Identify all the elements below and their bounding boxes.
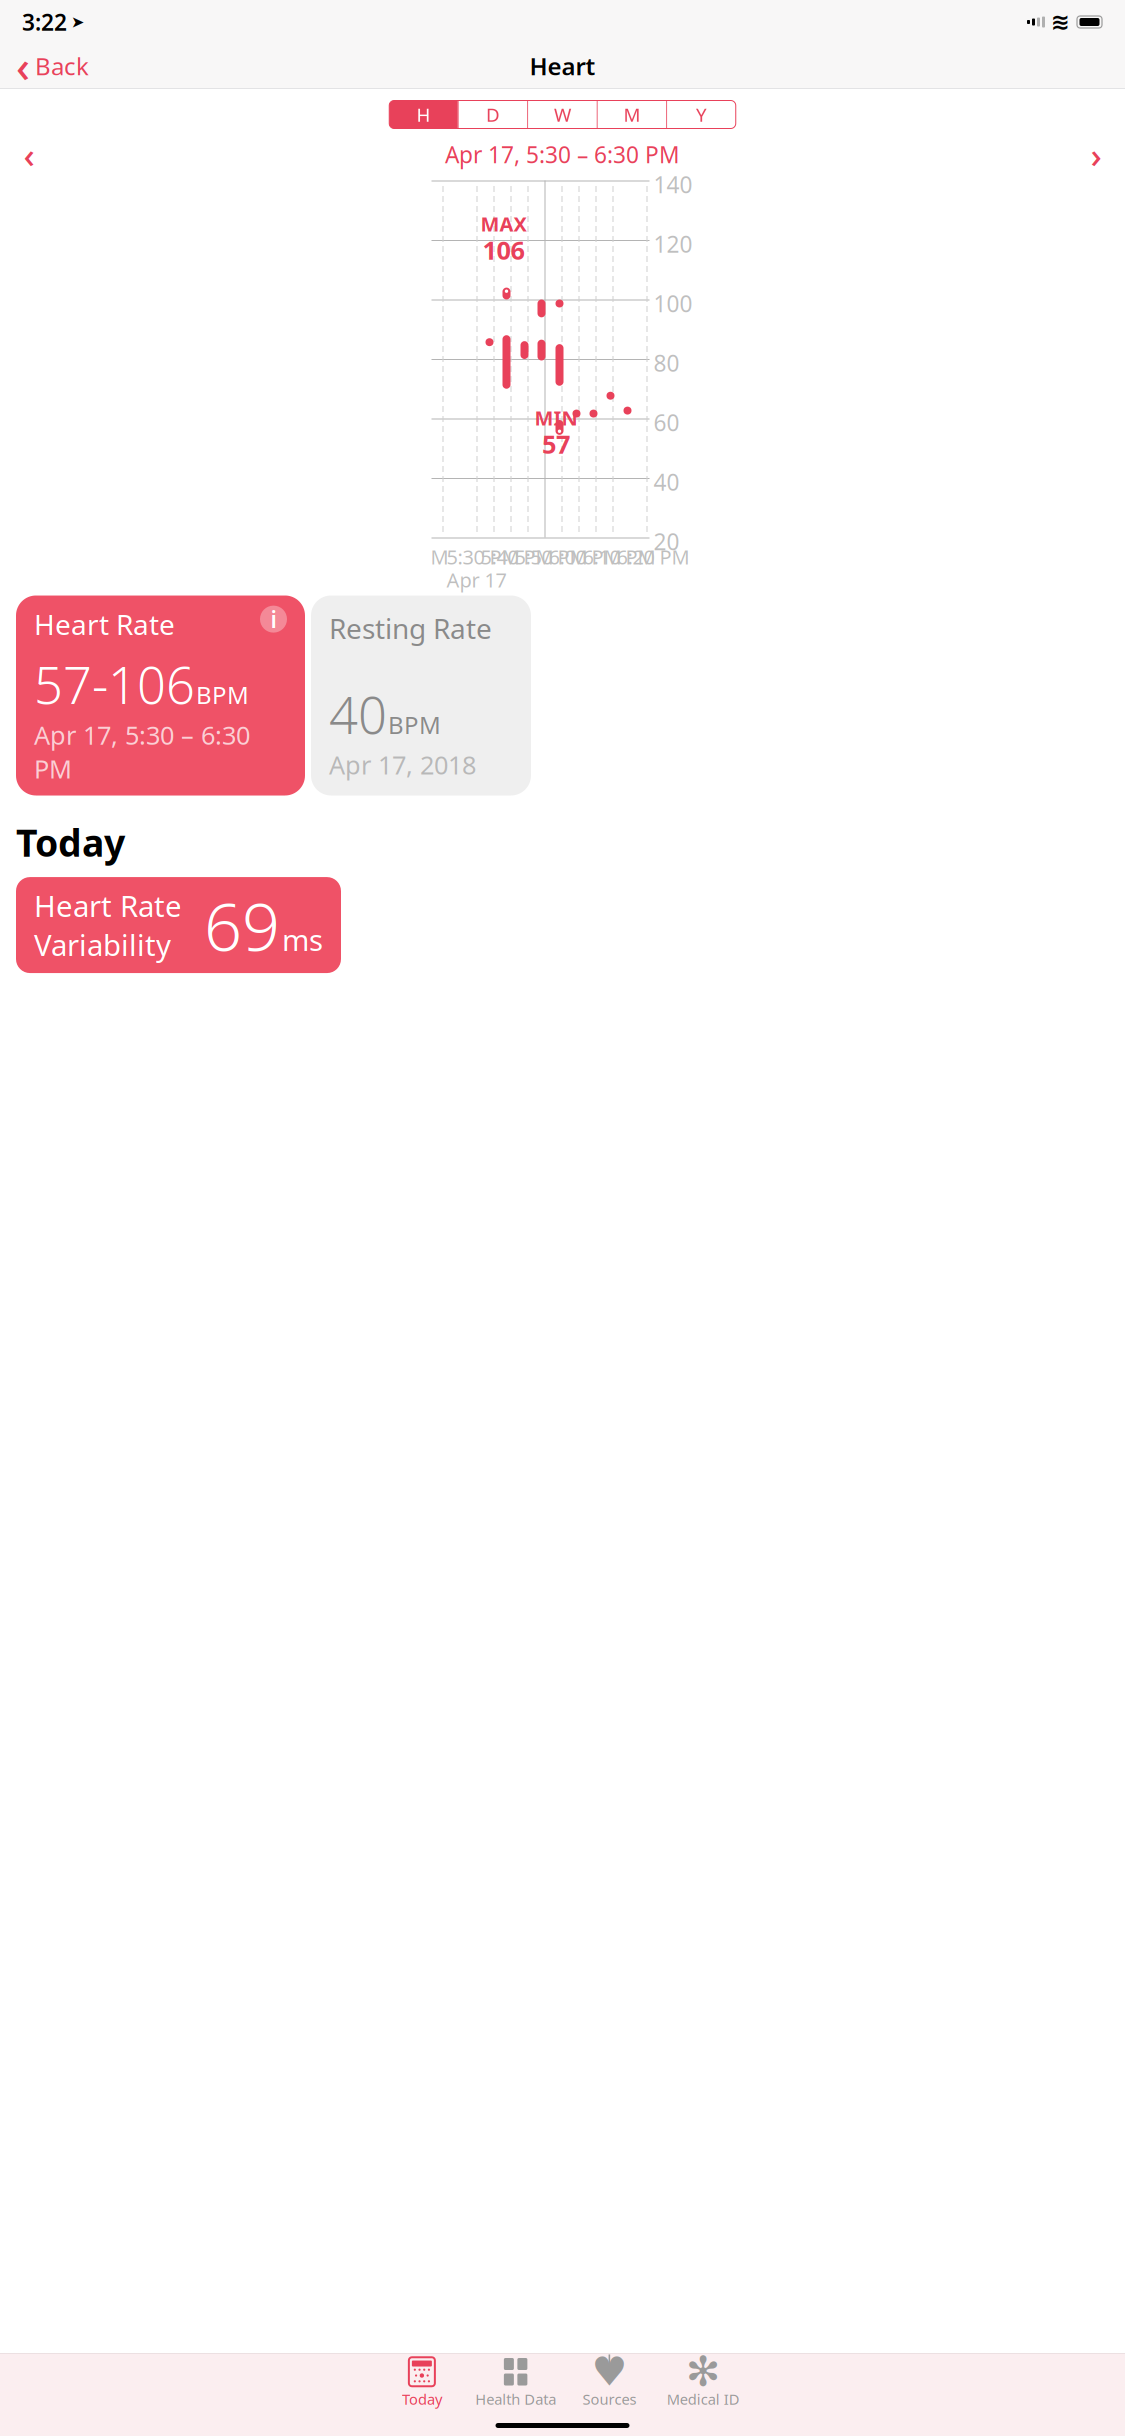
button[interactable]: Y: [667, 100, 736, 128]
staticText: 140: [653, 169, 692, 200]
button[interactable]: W: [528, 100, 597, 128]
button[interactable]: M: [598, 100, 666, 128]
staticText: Apr 17, 2018: [329, 748, 476, 781]
staticText: Back: [35, 50, 89, 82]
staticText: 120: [653, 229, 692, 259]
button[interactable]: Resting Rate: [311, 595, 531, 795]
staticText: 100: [653, 288, 692, 319]
staticText: ≋: [1051, 9, 1070, 35]
staticText: 57-106: [34, 651, 195, 718]
staticText: 5:50 PM: [514, 543, 587, 570]
button[interactable]: H: [389, 100, 458, 128]
staticText: ›: [1090, 131, 1101, 177]
staticText: M: [430, 543, 448, 570]
staticText: Resting Rate: [329, 609, 492, 647]
staticText: 6:00 PM: [548, 543, 621, 570]
staticText: 6:10 PM: [582, 543, 655, 570]
button[interactable]: Previous hour: [12, 137, 46, 171]
staticText: Sources: [582, 2389, 636, 2409]
staticText: 6:20 PM: [616, 543, 689, 570]
staticText: ‹: [16, 38, 30, 94]
button[interactable]: ‹: [8, 34, 89, 98]
staticText: 5:30 PM: [446, 543, 519, 570]
staticText: Apr 17, 5:30 – 6:30 PM: [445, 139, 680, 169]
staticText: ➤: [71, 13, 84, 31]
button[interactable]: ✻: [656, 2358, 750, 2407]
staticText: ‹: [23, 131, 34, 177]
staticText: MIN: [534, 404, 577, 431]
button[interactable]: Heart Rate: [16, 595, 305, 795]
staticText: Today: [402, 2389, 442, 2409]
staticText: Apr 17, 5:30 – 6:30 PM: [34, 718, 250, 785]
staticText: MAX: [480, 210, 526, 237]
staticText: ♥: [591, 2349, 627, 2394]
staticText: ms: [282, 920, 323, 959]
staticText: 40: [653, 467, 679, 497]
staticText: 69: [204, 881, 280, 969]
button[interactable]: Next hour: [1079, 137, 1113, 171]
staticText: Heart Rate Variability: [34, 886, 182, 964]
button[interactable]: ♥: [562, 2358, 656, 2407]
staticText: BPM: [388, 709, 441, 740]
staticText: 3:22: [22, 7, 67, 37]
button[interactable]: Health Data: [469, 2358, 563, 2407]
staticText: Apr 17: [446, 566, 506, 593]
button[interactable]: Today: [375, 2358, 469, 2407]
staticText: D: [486, 102, 500, 127]
staticText: M: [623, 102, 640, 127]
button[interactable]: D: [459, 100, 527, 128]
staticText: Medical ID: [667, 2389, 740, 2409]
staticText: ✻: [686, 2348, 721, 2395]
staticText: i: [270, 604, 276, 634]
staticText: Heart: [529, 50, 595, 82]
staticText: 60: [653, 407, 679, 438]
staticText: 5:40 PM: [480, 543, 553, 570]
staticText: Y: [696, 102, 707, 127]
staticText: 80: [653, 348, 679, 378]
staticText: 57: [542, 427, 570, 461]
staticText: BPM: [196, 679, 249, 711]
staticText: W: [554, 102, 571, 127]
staticText: Heart Rate: [34, 606, 175, 643]
staticText: ▾: [606, 2366, 613, 2383]
staticText: H: [416, 102, 430, 127]
staticText: 40: [329, 681, 387, 748]
staticText: Today: [16, 817, 125, 867]
staticText: 20: [653, 526, 679, 557]
button[interactable]: Heart Rate Variability: [16, 877, 341, 973]
staticText: Health Data: [475, 2389, 556, 2409]
staticText: 106: [482, 233, 524, 267]
